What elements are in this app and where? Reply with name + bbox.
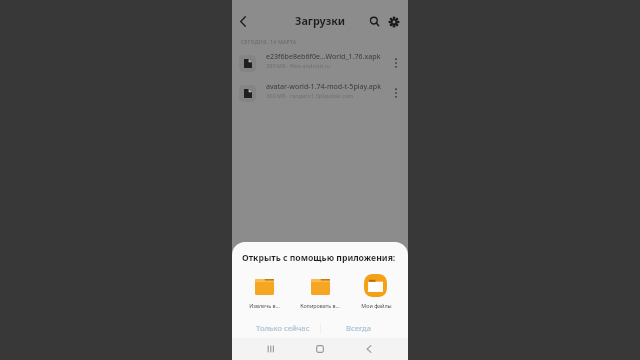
button[interactable]: Только сейчас [245,319,320,337]
staticText: Открыть с помощью приложения: [242,252,396,264]
button[interactable]: Search [365,12,384,31]
button[interactable]: Home [295,338,344,360]
staticText: Только сейчас [256,323,310,333]
staticText: СЕГОДНЯ, 14 МАРТА [241,38,297,45]
staticText: Копировать в… [300,302,340,309]
button[interactable]: Back [233,12,252,31]
staticText: 383 МБ · files-android.ru [266,62,331,70]
button[interactable]: More options [388,53,403,73]
button[interactable]: e23f6be8eb6f0e…World_1.76.xapk [232,48,408,72]
staticText: e23f6be8eb6f0e…World_1.76.xapk [266,51,381,61]
button[interactable]: Settings [384,12,403,31]
button[interactable]: Recents [247,338,295,360]
button[interactable]: avatar-world-1.74-mod-t-5play.apk [232,78,408,102]
button[interactable]: Копировать в… [292,274,348,310]
staticText: Извлечь в… [249,302,280,309]
button[interactable]: Извлечь в… [236,274,292,310]
button[interactable]: More options [388,83,403,103]
staticText: 360 МБ · ranger.s1.5playdisk.com [266,92,354,100]
staticText: avatar-world-1.74-mod-t-5play.apk [266,81,381,91]
staticText: Мои файлы [361,302,392,309]
button[interactable]: Всегда [321,319,397,337]
button[interactable]: Мои файлы [348,274,404,310]
button[interactable]: Back [344,338,393,360]
staticText: Загрузки [295,13,346,28]
staticText: Всегда [346,323,372,333]
